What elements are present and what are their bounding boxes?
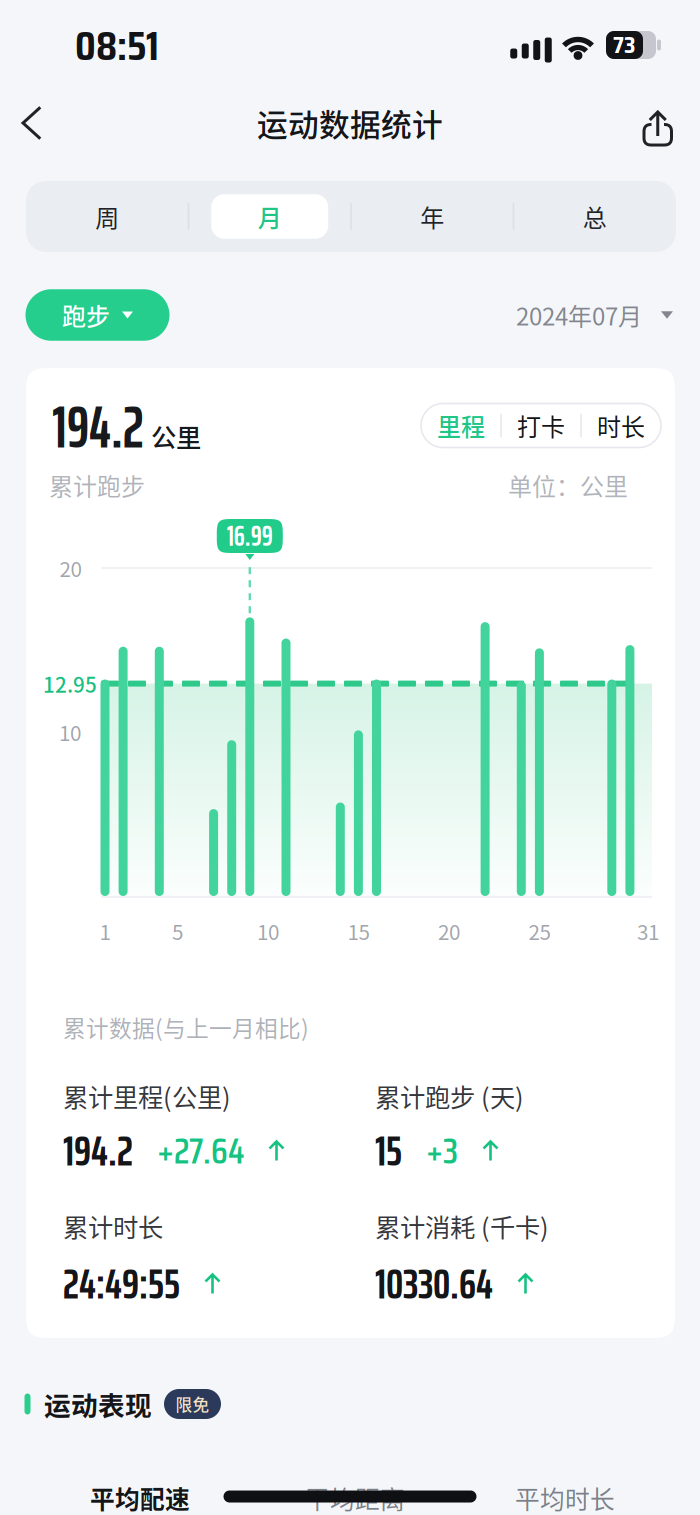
- staticText: 15: [375, 1118, 402, 1184]
- staticText: 打卡: [517, 408, 565, 443]
- button[interactable]: 时长: [581, 403, 661, 447]
- staticText: 时长: [597, 408, 645, 443]
- button[interactable]: Share: [622, 78, 692, 168]
- button[interactable]: 里程: [421, 403, 501, 447]
- staticText: 跑步: [62, 298, 110, 332]
- staticText: 运动数据统计: [257, 101, 443, 145]
- staticText: 1: [99, 916, 110, 946]
- staticText: 24:49:55: [63, 1251, 180, 1317]
- staticText: 累计跑步 (天): [375, 1078, 524, 1114]
- staticText: 年: [420, 199, 444, 234]
- staticText: 10: [257, 916, 279, 946]
- staticText: 15: [347, 916, 369, 946]
- staticText: 194.2: [52, 381, 144, 473]
- staticText: 10330.64: [375, 1251, 493, 1317]
- button[interactable]: 年: [351, 181, 513, 252]
- button[interactable]: Back: [0, 78, 78, 168]
- staticText: 73: [613, 27, 635, 63]
- staticText: 公里: [151, 418, 201, 454]
- staticText: 运动表现: [44, 1385, 152, 1423]
- staticText: 累计时长: [63, 1208, 163, 1244]
- staticText: 08:51: [75, 14, 159, 77]
- staticText: 10: [59, 717, 81, 747]
- staticText: 累计数据(与上一月相比): [63, 1011, 309, 1043]
- staticText: 累计跑步: [49, 468, 145, 502]
- button[interactable]: 周: [26, 181, 188, 252]
- staticText: 周: [95, 199, 119, 234]
- staticText: 194.2: [63, 1118, 133, 1184]
- button[interactable]: 平均距离: [265, 1470, 445, 1515]
- staticText: 2024年07月: [516, 298, 642, 332]
- staticText: 平均时长: [515, 1480, 615, 1515]
- staticText: 16.99: [227, 514, 273, 558]
- staticText: 平均配速: [90, 1480, 190, 1515]
- staticText: 月: [258, 199, 282, 234]
- staticText: 5: [172, 916, 183, 946]
- button[interactable]: 月: [188, 181, 351, 252]
- staticText: 31: [637, 916, 659, 946]
- button[interactable]: 打卡: [501, 403, 581, 447]
- staticText: 限免: [175, 1392, 209, 1416]
- button[interactable]: 平均时长: [475, 1470, 655, 1515]
- button[interactable]: 平均配速: [50, 1470, 230, 1515]
- staticText: +27.64: [157, 1123, 244, 1179]
- staticText: 25: [528, 916, 550, 946]
- staticText: 20: [59, 553, 81, 583]
- staticText: 12.95: [43, 669, 97, 699]
- staticText: 里程: [437, 408, 485, 443]
- staticText: 平均距离: [305, 1480, 405, 1515]
- staticText: +3: [426, 1123, 458, 1179]
- button[interactable]: 总: [513, 181, 676, 252]
- button[interactable]: 跑步: [25, 289, 169, 341]
- button[interactable]: 2024年07月: [516, 289, 676, 341]
- staticText: 总: [583, 199, 607, 234]
- staticText: 20: [438, 916, 460, 946]
- staticText: 单位：公里: [508, 468, 628, 502]
- staticText: 累计里程(公里): [63, 1078, 231, 1114]
- staticText: 累计消耗 (千卡): [375, 1208, 549, 1244]
